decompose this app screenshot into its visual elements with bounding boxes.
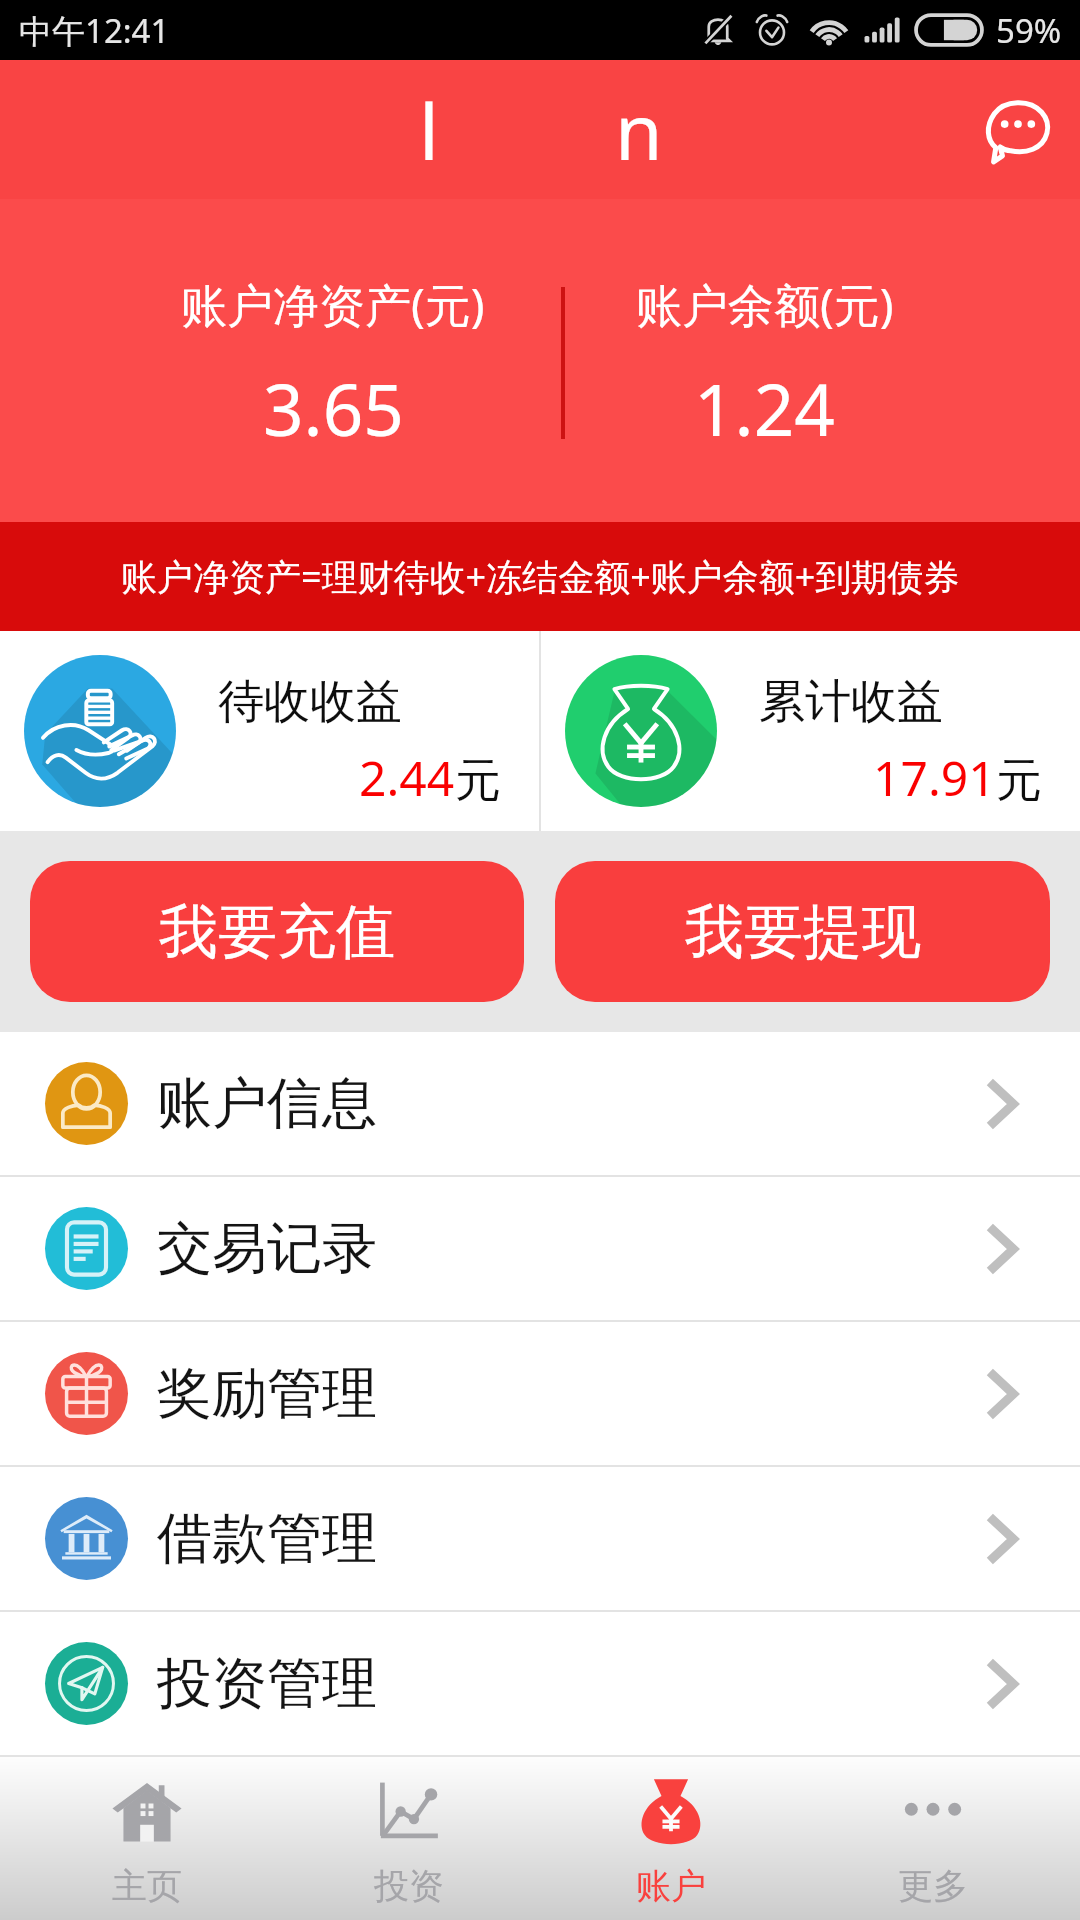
button[interactable]: 我要提现 bbox=[555, 861, 1050, 1002]
staticText: 1.24 bbox=[694, 360, 835, 457]
staticText: 账户净资产(元) bbox=[181, 273, 485, 336]
staticText: 交易记录 bbox=[157, 1214, 377, 1283]
button[interactable]: Customer service chat bbox=[970, 82, 1066, 178]
staticText: 中午12:41 bbox=[19, 8, 170, 53]
staticText: 投资 bbox=[374, 1864, 444, 1908]
staticText: 待收收益 bbox=[218, 673, 402, 731]
staticText: 累计收益 bbox=[759, 673, 943, 731]
button[interactable]: 待收收益 bbox=[0, 631, 539, 831]
staticText: 借款管理 bbox=[157, 1504, 377, 1573]
staticText: 2.44 bbox=[359, 745, 455, 810]
button[interactable]: 更多 bbox=[802, 1757, 1064, 1920]
staticText: 账户净资产=理财待收+冻结金额+账户余额+到期债券 bbox=[121, 552, 960, 601]
button[interactable]: 账户信息 bbox=[0, 1032, 1080, 1175]
staticText: 奖励管理 bbox=[157, 1359, 377, 1428]
button[interactable]: 交易记录 bbox=[0, 1177, 1080, 1320]
button[interactable]: 主页 bbox=[15, 1757, 278, 1920]
staticText: l bbox=[419, 78, 439, 183]
staticText: 更多 bbox=[898, 1864, 968, 1908]
button[interactable]: 投资 bbox=[278, 1757, 540, 1920]
staticText: n bbox=[615, 78, 663, 183]
staticText: 账户信息 bbox=[157, 1069, 377, 1138]
button[interactable]: 我要充值 bbox=[30, 861, 524, 1002]
button[interactable]: 奖励管理 bbox=[0, 1322, 1080, 1465]
staticText: 3.65 bbox=[263, 360, 404, 457]
staticText: 17.91 bbox=[873, 745, 996, 810]
staticText: 主页 bbox=[112, 1864, 182, 1908]
staticText: 账户余额(元) bbox=[636, 273, 894, 336]
staticText: 投资管理 bbox=[157, 1649, 377, 1718]
button[interactable]: 账户 bbox=[540, 1757, 802, 1920]
staticText: 账户 bbox=[636, 1864, 706, 1908]
staticText: 元 bbox=[455, 752, 501, 810]
staticText: 我要充值 bbox=[159, 895, 395, 969]
button[interactable]: 借款管理 bbox=[0, 1467, 1080, 1610]
staticText: 我要提现 bbox=[685, 895, 921, 969]
staticText: 59% bbox=[996, 8, 1062, 53]
button[interactable]: 累计收益 bbox=[541, 631, 1080, 831]
button[interactable]: 投资管理 bbox=[0, 1612, 1080, 1755]
staticText: 元 bbox=[996, 752, 1042, 810]
